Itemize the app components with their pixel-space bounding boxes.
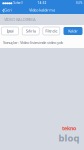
staticText: Filtrele bbox=[45, 28, 57, 34]
staticText: tekno bbox=[62, 124, 76, 132]
staticText: VİDEO KALDIRMA bbox=[4, 17, 36, 22]
staticText: İptal bbox=[6, 28, 13, 34]
staticText: 84% bbox=[76, 1, 82, 5]
button[interactable]: ‹ bbox=[0, 6, 12, 14]
button[interactable]: İptal bbox=[1, 27, 18, 35]
button[interactable]: Sıfırla bbox=[22, 27, 39, 35]
staticText: Sıfırla bbox=[26, 28, 36, 34]
button[interactable]: Filtrele bbox=[43, 27, 60, 35]
staticText: Video kaldırma bbox=[29, 7, 55, 13]
staticText: ‹ bbox=[2, 5, 4, 15]
staticText: 14:32 bbox=[37, 1, 46, 5]
staticText: ●●●●● Turkcell bbox=[2, 1, 23, 5]
staticText: Sonuçlar: Video listesinde video yok bbox=[3, 40, 63, 45]
button[interactable]: Kaldır bbox=[63, 27, 82, 35]
staticText: bloq bbox=[58, 132, 79, 144]
staticText: Geri bbox=[4, 7, 12, 13]
staticText: Kaldır bbox=[68, 28, 78, 34]
